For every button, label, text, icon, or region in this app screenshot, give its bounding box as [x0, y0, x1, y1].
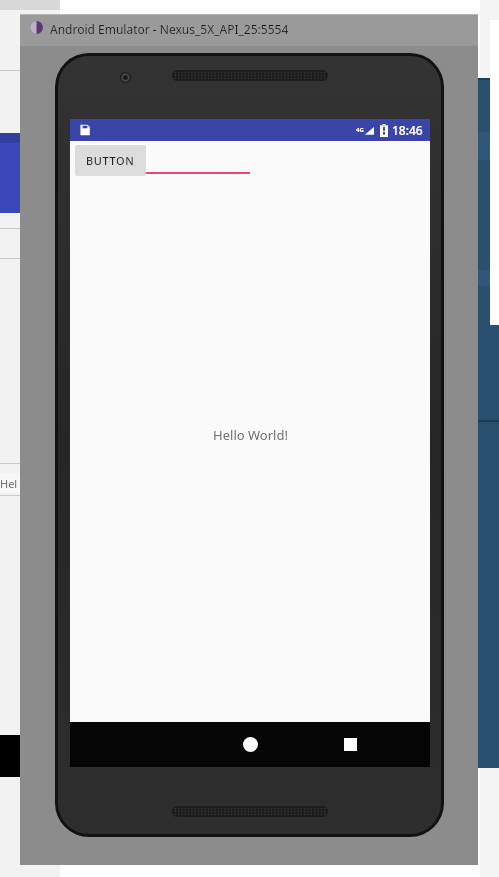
staticText: 18:46 [392, 122, 423, 138]
staticText: Hel [0, 476, 18, 491]
staticText: Hello World! [213, 426, 288, 444]
button[interactable]: Recent apps [320, 722, 380, 767]
button[interactable] [143, 172, 250, 174]
staticText: Android Emulator - Nexus_5X_API_25:5554 [50, 21, 289, 37]
button[interactable]: BUTTON [75, 145, 146, 176]
staticText: BUTTON [86, 153, 135, 168]
button[interactable]: Home [220, 722, 280, 767]
staticText: 4G [356, 126, 364, 134]
